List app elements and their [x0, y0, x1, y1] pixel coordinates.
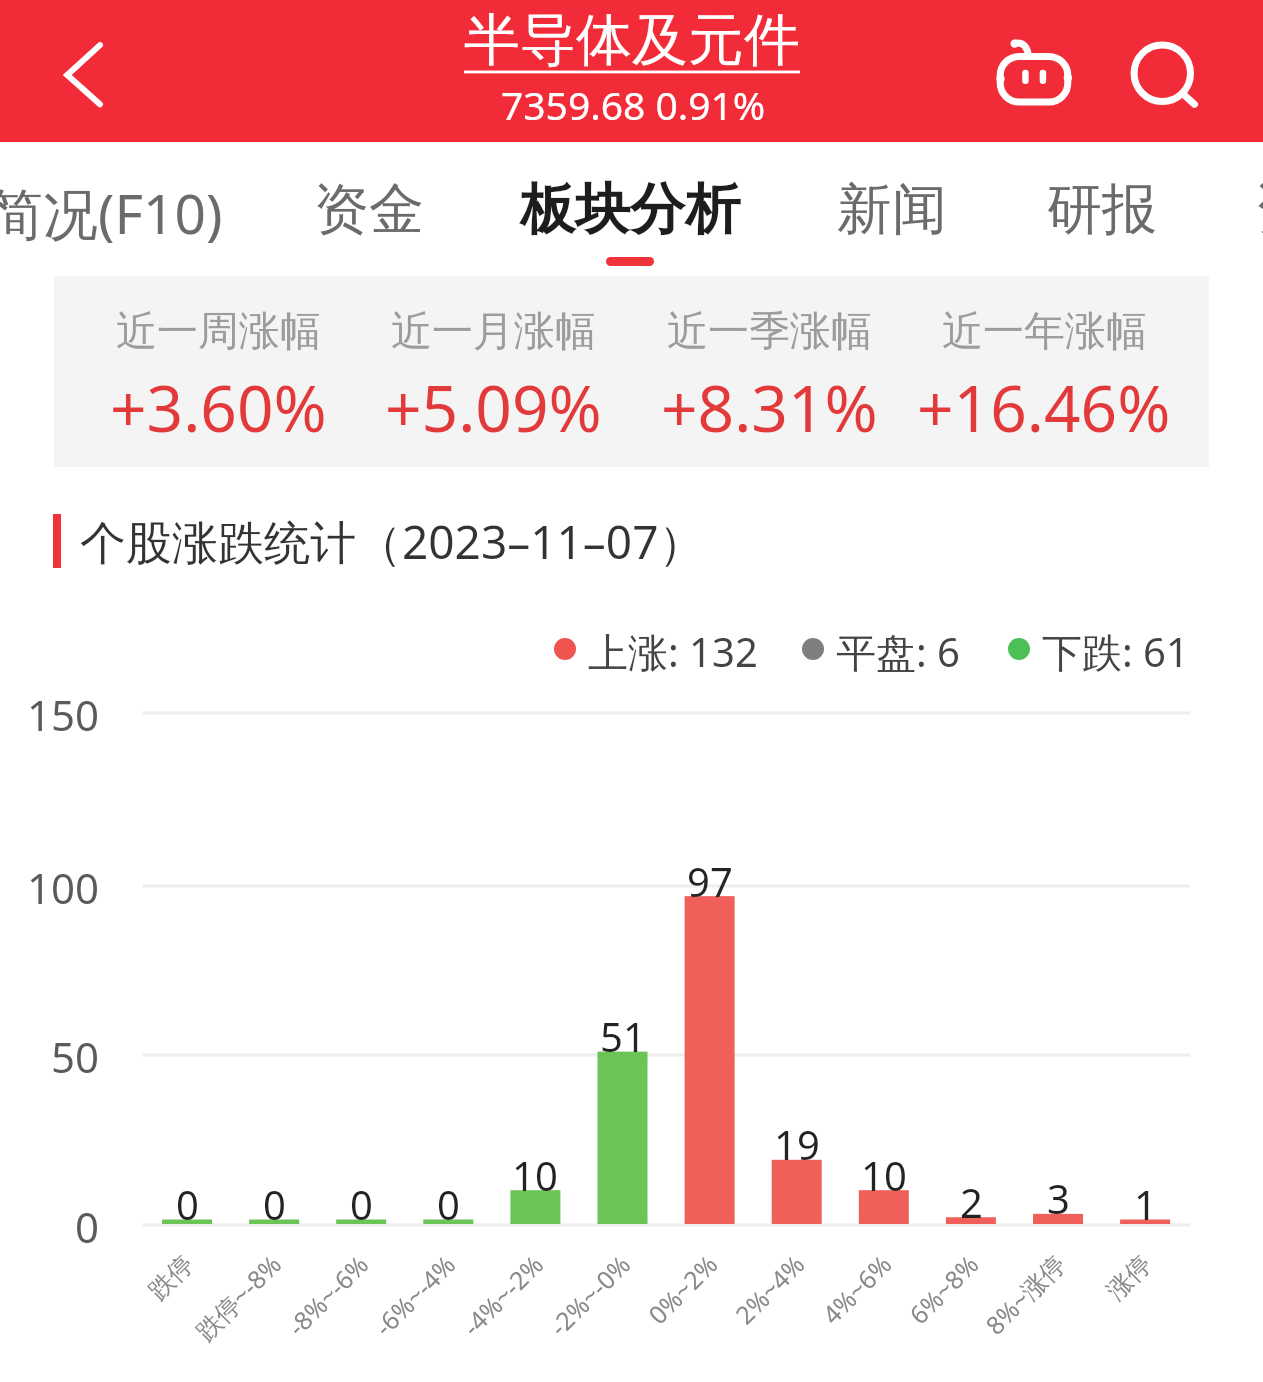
staticText: 研报: [1047, 175, 1157, 244]
staticText: +8.31%: [661, 364, 878, 451]
staticText: 资料: [1255, 175, 1263, 244]
staticText: 2: [960, 1175, 983, 1229]
staticText: 2%~4%: [727, 1247, 811, 1331]
staticText: 50: [51, 1028, 100, 1085]
staticText: 半导体及元件: [464, 5, 800, 76]
staticText: +5.09%: [385, 364, 602, 451]
staticText: 跌停~-8%: [188, 1247, 288, 1347]
staticText: 10: [861, 1148, 907, 1202]
staticText: 下跌: 61: [1042, 624, 1189, 674]
staticText: 板块分析: [520, 175, 740, 244]
staticText: 近一周涨幅: [116, 306, 321, 358]
button[interactable]: 资料: [1248, 158, 1263, 268]
staticText: 近一年涨幅: [942, 306, 1147, 358]
staticText: 97: [687, 854, 733, 908]
staticText: 3: [1047, 1171, 1070, 1225]
staticText: 8%~涨停: [978, 1247, 1072, 1341]
button[interactable]: Assistant: [996, 36, 1072, 112]
staticText: 19: [774, 1117, 820, 1171]
button[interactable]: 资金: [307, 158, 431, 268]
staticText: -4%~-2%: [455, 1247, 550, 1343]
button[interactable]: 板块分析: [512, 158, 748, 268]
staticText: 平盘: 6: [836, 624, 960, 674]
staticText: 0: [350, 1177, 373, 1231]
staticText: 简况(F10): [0, 175, 223, 250]
staticText: 0: [263, 1177, 286, 1231]
staticText: 100: [27, 859, 100, 916]
button[interactable]: 上涨: 132: [554, 624, 758, 674]
button[interactable]: Back: [42, 30, 126, 114]
staticText: 0%~2%: [640, 1247, 724, 1331]
button[interactable]: 简况(F10): [0, 158, 223, 268]
staticText: +16.46%: [917, 364, 1171, 451]
staticText: 7359.68 0.91%: [501, 78, 766, 131]
staticText: 4%~6%: [814, 1247, 898, 1331]
staticText: +3.60%: [110, 364, 327, 451]
staticText: 新闻: [837, 175, 947, 244]
staticText: 1: [1134, 1177, 1157, 1231]
staticText: -6%~-4%: [367, 1247, 462, 1343]
staticText: -8%~-6%: [280, 1247, 375, 1343]
staticText: 10: [512, 1148, 558, 1202]
staticText: 6%~8%: [901, 1247, 985, 1331]
staticText: 上涨: 132: [588, 624, 758, 674]
staticText: 资金: [314, 175, 424, 244]
button[interactable]: 平盘: 6: [802, 624, 960, 674]
staticText: 0: [176, 1177, 199, 1231]
staticText: 个股涨跌统计（2023–11–07）: [80, 510, 705, 573]
staticText: 跌停: [142, 1249, 200, 1306]
staticText: 150: [27, 686, 100, 743]
staticText: 涨停: [1100, 1249, 1158, 1306]
staticText: 0: [437, 1177, 460, 1231]
staticText: 51: [600, 1009, 646, 1063]
button[interactable]: 研报: [1040, 158, 1164, 268]
staticText: 近一季涨幅: [667, 306, 872, 358]
staticText: -2%~-0%: [542, 1247, 637, 1343]
button[interactable]: 新闻: [830, 158, 954, 268]
staticText: 0: [75, 1198, 100, 1255]
staticText: 近一月涨幅: [391, 306, 596, 358]
button[interactable]: 下跌: 61: [1008, 624, 1189, 674]
button[interactable]: Search: [1131, 40, 1199, 108]
